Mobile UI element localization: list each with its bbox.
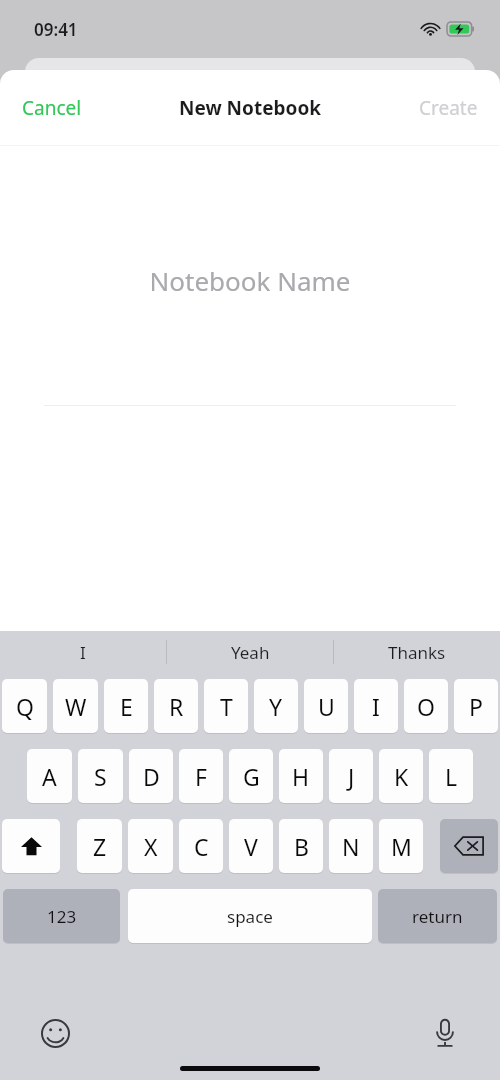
staticText: X <box>144 831 158 862</box>
staticText: Create <box>419 95 478 121</box>
button[interactable]: return <box>378 889 497 943</box>
button[interactable]: Cancel <box>6 85 98 131</box>
button[interactable]: H <box>279 749 323 803</box>
staticText: I <box>372 691 380 722</box>
button[interactable]: C <box>179 819 223 873</box>
button[interactable]: space <box>128 889 372 943</box>
staticText: Z <box>93 831 107 862</box>
staticText: W <box>65 691 87 722</box>
staticText: Thanks <box>388 641 446 664</box>
button[interactable]: I <box>0 631 166 673</box>
staticText: O <box>417 691 435 722</box>
button[interactable]: P <box>454 679 498 733</box>
button[interactable]: Z <box>77 819 122 873</box>
staticText: Q <box>16 691 34 722</box>
staticText: Yeah <box>231 641 270 664</box>
button[interactable]: B <box>279 819 323 873</box>
staticText: C <box>194 831 209 862</box>
staticText: T <box>220 691 233 722</box>
button[interactable]: F <box>179 749 223 803</box>
staticText: N <box>342 831 360 862</box>
staticText: R <box>169 691 184 722</box>
button[interactable]: N <box>329 819 373 873</box>
staticText: H <box>292 761 310 792</box>
button[interactable]: Thanks <box>334 631 500 673</box>
button[interactable]: 123 <box>3 889 120 943</box>
staticText: return <box>412 905 463 928</box>
button[interactable]: I <box>354 679 398 733</box>
staticText: G <box>243 761 260 792</box>
staticText: 123 <box>47 905 77 928</box>
staticText: S <box>94 761 107 792</box>
staticText: V <box>244 831 258 862</box>
staticText: D <box>143 761 160 792</box>
staticText: K <box>394 761 409 792</box>
staticText: M <box>391 831 412 862</box>
button[interactable]: U <box>304 679 348 733</box>
button[interactable]: O <box>404 679 448 733</box>
staticText: L <box>445 761 458 792</box>
button[interactable]: E <box>104 679 148 733</box>
staticText: U <box>318 691 335 722</box>
button[interactable]: G <box>229 749 273 803</box>
button[interactable]: Dictation <box>422 1010 468 1056</box>
button[interactable]: W <box>53 679 98 733</box>
button[interactable]: K <box>379 749 423 803</box>
staticText: E <box>120 691 133 722</box>
staticText: A <box>42 761 57 792</box>
button[interactable]: Y <box>254 679 298 733</box>
button[interactable]: Backspace <box>440 819 498 873</box>
button[interactable]: Emoji keyboard <box>32 1010 78 1056</box>
staticText: B <box>294 831 309 862</box>
button[interactable]: A <box>27 749 72 803</box>
button[interactable]: Notebook Name <box>0 263 500 298</box>
staticText: space <box>227 905 273 928</box>
button[interactable]: J <box>329 749 373 803</box>
staticText: Y <box>269 691 283 722</box>
button[interactable]: T <box>204 679 248 733</box>
button[interactable]: S <box>78 749 123 803</box>
button[interactable]: Shift <box>2 819 60 873</box>
staticText: New Notebook <box>179 95 322 121</box>
staticText: J <box>348 761 355 792</box>
button[interactable]: Yeah <box>167 631 333 673</box>
button[interactable]: M <box>379 819 423 873</box>
button[interactable]: L <box>429 749 473 803</box>
button[interactable]: Q <box>2 679 47 733</box>
staticText: P <box>469 691 483 722</box>
staticText: I <box>80 641 86 664</box>
button[interactable]: V <box>229 819 273 873</box>
button[interactable]: X <box>128 819 173 873</box>
button[interactable]: R <box>154 679 198 733</box>
staticText: 09:41 <box>34 18 78 41</box>
staticText: Cancel <box>22 95 82 121</box>
button[interactable]: D <box>129 749 173 803</box>
button[interactable]: Create <box>403 85 494 131</box>
staticText: F <box>195 761 207 792</box>
